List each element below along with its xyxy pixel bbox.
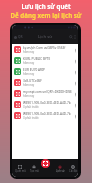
button[interactable]: KURL PUBLIC BYTE — [12, 55, 78, 66]
staticText: WE901-905-0a0-3ED-4ED-A4D-7b — [23, 101, 71, 105]
staticText: 3 phút trước — [23, 105, 39, 109]
button[interactable]: Item menu — [74, 47, 77, 53]
button[interactable]: Item menu — [74, 80, 77, 86]
button[interactable]: ky.vn/ph Com uvGBFSv 0563f — [12, 44, 78, 55]
button[interactable]: Search — [69, 35, 73, 39]
button[interactable]: Quét mã — [13, 159, 27, 177]
staticText: hôm nay — [23, 50, 35, 54]
staticText: Quét mã — [15, 169, 26, 173]
button[interactable]: Cài đặt — [66, 159, 78, 177]
button[interactable]: WE901-905-0a0-3ED-4ED-A4D-7b — [12, 99, 78, 110]
staticText: Lịch sử — [38, 34, 53, 40]
staticText: hôm nay — [23, 94, 35, 98]
staticText: Lưu lịch sử quét — [21, 2, 71, 10]
staticText: Dễ dàng xem lại lịch sử — [10, 11, 82, 19]
staticText: QR — [18, 35, 23, 39]
button[interactable]: my.vnpt.com.vn/QR?=DKDDHDSB — [12, 88, 78, 99]
button[interactable]: WE901-905-0a0-3ED-4ED-A4D-7b — [12, 110, 78, 121]
staticText: 3c8-UTCeI6lF — [23, 79, 42, 83]
button[interactable]: More options — [74, 35, 76, 39]
button[interactable]: Lịch sử — [53, 159, 67, 177]
button[interactable]: EUR EU70 ARIP — [12, 66, 78, 77]
staticText: KURL PUBLIC BYTE — [23, 57, 51, 61]
staticText: WE901-905-0a0-3ED-4ED-A4D-7b — [23, 112, 71, 116]
button[interactable]: Item menu — [74, 91, 77, 97]
button[interactable]: Item menu — [74, 102, 77, 108]
button[interactable]: Item menu — [74, 113, 77, 119]
staticText: Tạo mã — [30, 169, 39, 173]
button[interactable]: Scan QR code — [41, 159, 50, 168]
staticText: EUR EU70 ARIP — [23, 68, 45, 72]
staticText: Cài đặt — [69, 169, 78, 173]
button[interactable]: Item menu — [74, 58, 77, 64]
staticText: ky.vn/ph Com uvGBFSv 0563f — [23, 46, 66, 50]
staticText: 3 phút trước — [23, 116, 39, 120]
button[interactable]: App logo — [14, 35, 23, 39]
staticText: my.vnpt.com.vn/QR?=DKDDHDSB — [23, 90, 72, 94]
staticText: Lịch sử — [56, 169, 65, 173]
staticText: hôm nay — [23, 72, 35, 76]
staticText: hôm nay — [23, 83, 35, 87]
staticText: hôm nay — [23, 61, 35, 65]
button[interactable]: Item menu — [74, 69, 77, 75]
button[interactable]: Tạo mã — [27, 159, 41, 177]
button[interactable]: 3c8-UTCeI6lF — [12, 77, 78, 88]
